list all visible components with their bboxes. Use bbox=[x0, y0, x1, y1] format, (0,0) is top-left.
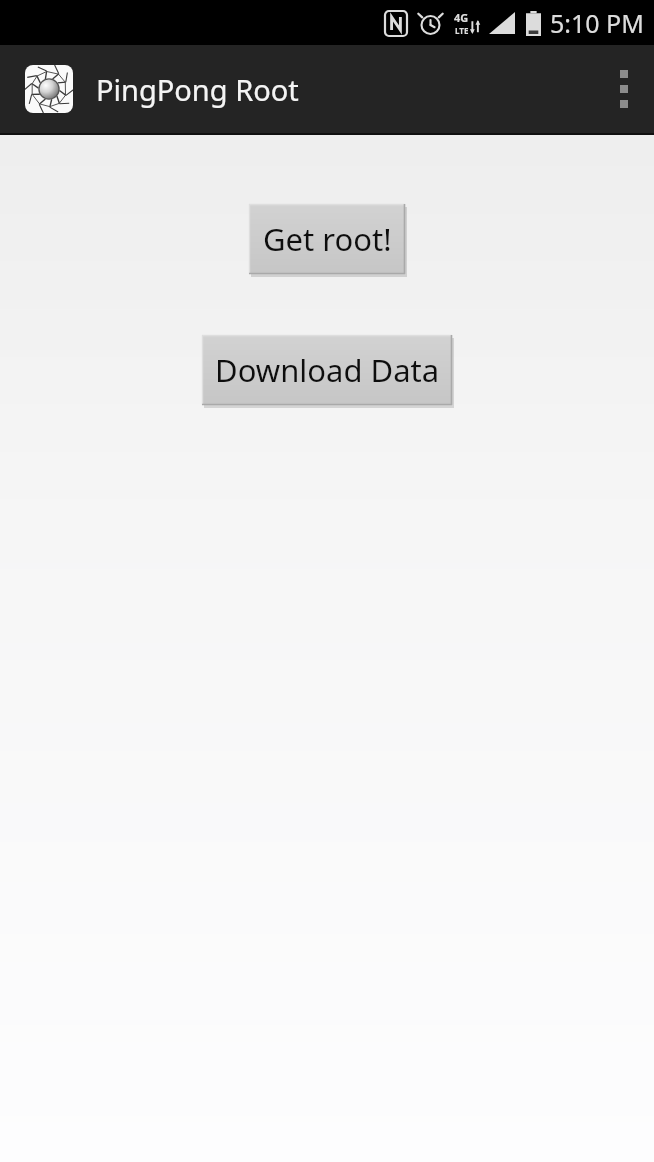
button[interactable]: More options bbox=[594, 45, 654, 133]
staticText: LTE bbox=[455, 25, 469, 36]
staticText: 5:10 PM bbox=[550, 6, 644, 40]
staticText: PingPong Root bbox=[96, 70, 299, 109]
button[interactable]: Download Data bbox=[202, 335, 452, 405]
button[interactable]: Get root! bbox=[249, 204, 405, 274]
staticText: Download Data bbox=[215, 349, 440, 391]
staticText: 4G bbox=[454, 10, 469, 25]
staticText: Get root! bbox=[263, 218, 392, 260]
